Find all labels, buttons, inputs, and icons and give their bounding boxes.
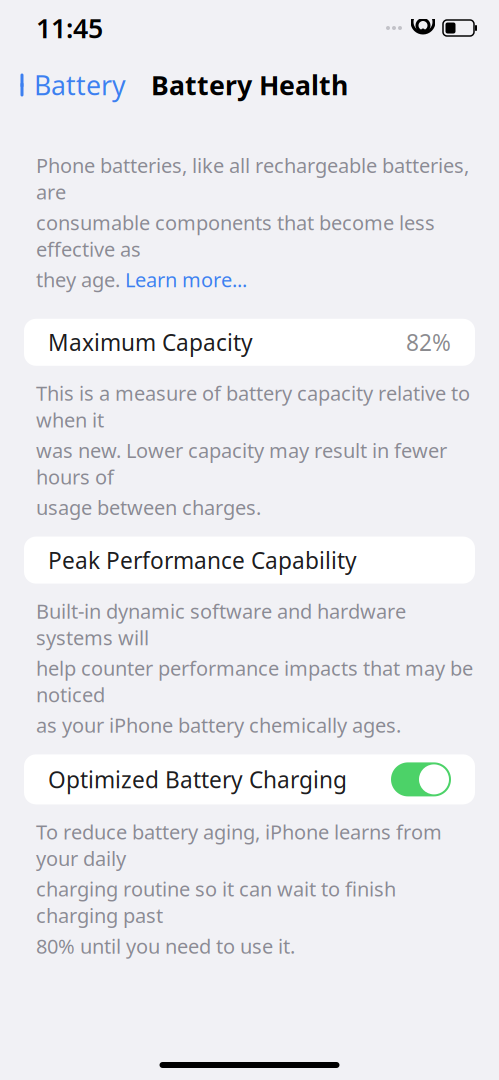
- button[interactable]: Battery: [0, 61, 126, 109]
- staticText: Built-in dynamic software and hardware s…: [36, 598, 406, 651]
- staticText: 11:45: [36, 10, 103, 46]
- staticText: as your iPhone battery chemically ages.: [36, 712, 401, 738]
- staticText: Phone batteries, like all rechargeable b…: [36, 152, 469, 205]
- staticText: was new. Lower capacity may result in fe…: [36, 437, 447, 490]
- staticText: they age.: [36, 266, 125, 293]
- staticText: Peak Performance Capability: [48, 545, 357, 575]
- staticText: charging routine so it can wait to finis…: [36, 875, 396, 929]
- staticText: 82%: [406, 327, 451, 357]
- staticText: Learn more...: [125, 266, 247, 293]
- staticText: 80% until you need to use it.: [36, 933, 295, 959]
- button[interactable]: Maximum Capacity: [24, 319, 475, 366]
- staticText: Optimized Battery Charging: [48, 764, 347, 794]
- button[interactable]: Peak Performance Capability: [24, 537, 475, 584]
- staticText: Battery: [34, 67, 126, 103]
- staticText: Maximum Capacity: [48, 327, 253, 357]
- staticText: To reduce battery aging, iPhone learns f…: [36, 818, 442, 871]
- button[interactable]: Learn more...: [125, 266, 247, 293]
- staticText: Battery Health: [151, 67, 348, 103]
- staticText: help counter performance impacts that ma…: [36, 655, 473, 708]
- button[interactable]: Optimized Battery Charging: [24, 754, 475, 804]
- staticText: consumable components that become less e…: [36, 209, 435, 262]
- staticText: This is a measure of battery capacity re…: [36, 380, 470, 433]
- staticText: usage between charges.: [36, 494, 261, 521]
